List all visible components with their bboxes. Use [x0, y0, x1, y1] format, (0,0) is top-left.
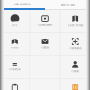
- button[interactable]: Select on map: [60, 10, 90, 32]
- button[interactable]: Clipboard: [0, 79, 30, 90]
- staticText: NEW LOCATION: [14, 3, 31, 5]
- button[interactable]: RECENTLY USED: [45, 0, 90, 10]
- staticText: Contact: [71, 70, 79, 73]
- button[interactable]: NEW LOCATION: [0, 0, 45, 10]
- staticText: Screen center: [38, 24, 52, 26]
- staticText: Points: [11, 46, 18, 49]
- staticText: RECENTLY USED: [60, 3, 74, 6]
- staticText: GPS: [12, 24, 18, 27]
- staticText: Address: [41, 46, 49, 49]
- button[interactable]: Address: [30, 33, 60, 55]
- staticText: Coordinates: [69, 47, 81, 50]
- staticText: Projection: [9, 68, 20, 71]
- button[interactable]: Screen center: [30, 10, 60, 32]
- button[interactable]: GPS: [0, 10, 30, 32]
- button[interactable]: Notes: [60, 79, 90, 90]
- button[interactable]: Projection: [0, 56, 30, 78]
- button[interactable]: Points: [0, 33, 30, 55]
- staticText: Select on map: [68, 24, 83, 27]
- button[interactable]: Coordinates: [60, 33, 90, 55]
- button[interactable]: Contact: [60, 56, 90, 78]
